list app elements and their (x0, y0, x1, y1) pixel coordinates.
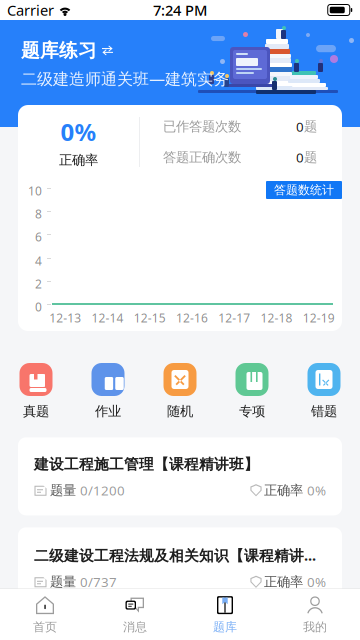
staticText: 题量 (50, 574, 76, 590)
staticText: 二级建设工程法规及相关知识【课程精讲班】 (34, 545, 326, 565)
button[interactable]: 随机 (144, 363, 216, 419)
staticText: 正确率 (264, 574, 303, 590)
button[interactable]: 题库 (180, 589, 270, 640)
staticText: 0/737 (80, 573, 117, 591)
staticText: 建设工程施工管理【课程精讲班】 (34, 455, 259, 473)
staticText: 8 (35, 206, 42, 222)
staticText: 错题 (311, 403, 337, 419)
staticText: 12-15 (134, 310, 166, 326)
staticText: 专项 (239, 403, 265, 419)
staticText: 7:24 PM (153, 0, 207, 20)
staticText: 已作答题次数 (163, 118, 241, 135)
staticText: Carrier (7, 0, 54, 20)
staticText: 0 (296, 148, 304, 166)
staticText: 题 (304, 149, 317, 166)
button[interactable]: 建设工程施工管理【课程精讲班】 (0, 437, 360, 515)
staticText: 0% (307, 481, 326, 499)
staticText: 12-19 (303, 310, 335, 326)
staticText: 12-17 (218, 310, 250, 326)
staticText: 0 (296, 118, 304, 135)
staticText: 随机 (167, 403, 193, 419)
staticText: 4 (35, 253, 42, 269)
staticText: 作业 (95, 403, 121, 419)
staticText: 首页 (33, 620, 57, 634)
staticText: 答题正确次数 (163, 149, 241, 166)
button[interactable]: 我的 (270, 589, 360, 640)
button[interactable]: 专项 (216, 363, 288, 419)
staticText: 10 (28, 183, 42, 199)
button[interactable]: 答题数统计 (266, 181, 342, 199)
staticText: 12-18 (261, 310, 293, 326)
staticText: 题 (304, 118, 317, 135)
staticText: 12-16 (176, 310, 208, 326)
staticText: 0/1200 (80, 481, 125, 499)
button[interactable]: 作业 (72, 363, 144, 419)
staticText: 0% (60, 116, 96, 148)
staticText: 题量 (50, 482, 76, 498)
staticText: 正确率 (264, 482, 303, 498)
button[interactable]: 错题 (288, 363, 360, 419)
button[interactable]: 首页 (0, 589, 90, 640)
staticText: 6 (35, 229, 42, 245)
staticText: 0% (307, 573, 326, 591)
staticText: 答题数统计 (274, 183, 334, 197)
button[interactable]: 消息 (90, 589, 180, 640)
staticText: 题库练习 (21, 39, 97, 62)
staticText: 二级建造师通关班—建筑实务 (21, 68, 229, 89)
staticText: 12-13 (49, 310, 81, 326)
button[interactable]: 二级建设工程法规及相关知识【课程精讲班】 (0, 527, 360, 605)
button[interactable]: 真题 (0, 363, 72, 419)
staticText: 0 (35, 299, 42, 315)
staticText: 我的 (303, 620, 327, 634)
staticText: 12-14 (91, 310, 123, 326)
button[interactable]: 题库练习 (21, 39, 113, 62)
staticText: 题库 (213, 620, 237, 634)
staticText: 正确率 (59, 152, 98, 168)
staticText: 真题 (23, 403, 49, 419)
staticText: 2 (35, 276, 42, 292)
staticText: 消息 (123, 620, 147, 634)
